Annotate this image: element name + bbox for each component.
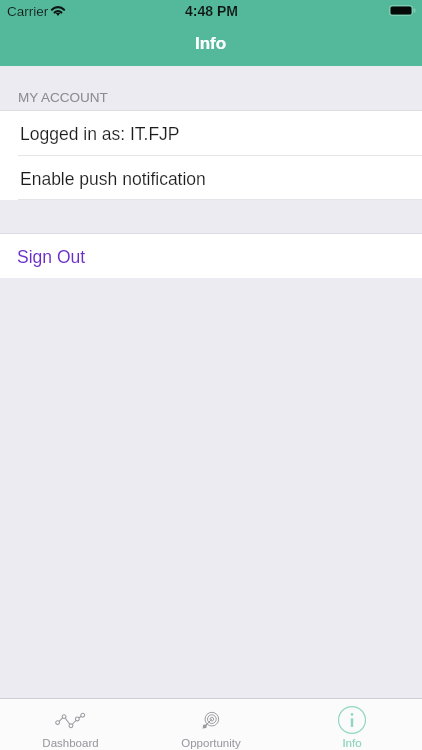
- staticText: MY ACCOUNT: [18, 90, 108, 105]
- button[interactable]: Logged in as: IT.FJP: [0, 110, 422, 155]
- staticText: Enable push notification: [20, 169, 206, 189]
- staticText: Opportunity: [181, 737, 241, 750]
- button[interactable]: Enable push notification: [0, 156, 422, 200]
- other: Opportunity: [202, 712, 219, 729]
- button[interactable]: Opportunity: [140, 699, 281, 750]
- staticText: Dashboard: [42, 737, 99, 750]
- other: Info: [338, 706, 366, 734]
- staticText: Sign Out: [17, 247, 86, 267]
- button[interactable]: Info: [281, 699, 422, 750]
- staticText: 4:48 PM: [185, 3, 238, 19]
- button[interactable]: Sign Out: [0, 233, 422, 278]
- staticText: Carrier: [7, 4, 49, 19]
- other: Dashboard: [56, 713, 84, 726]
- staticText: Info: [342, 737, 362, 750]
- button[interactable]: Dashboard: [0, 699, 140, 750]
- staticText: Logged in as: IT.FJP: [20, 124, 180, 144]
- staticText: Info: [195, 34, 227, 53]
